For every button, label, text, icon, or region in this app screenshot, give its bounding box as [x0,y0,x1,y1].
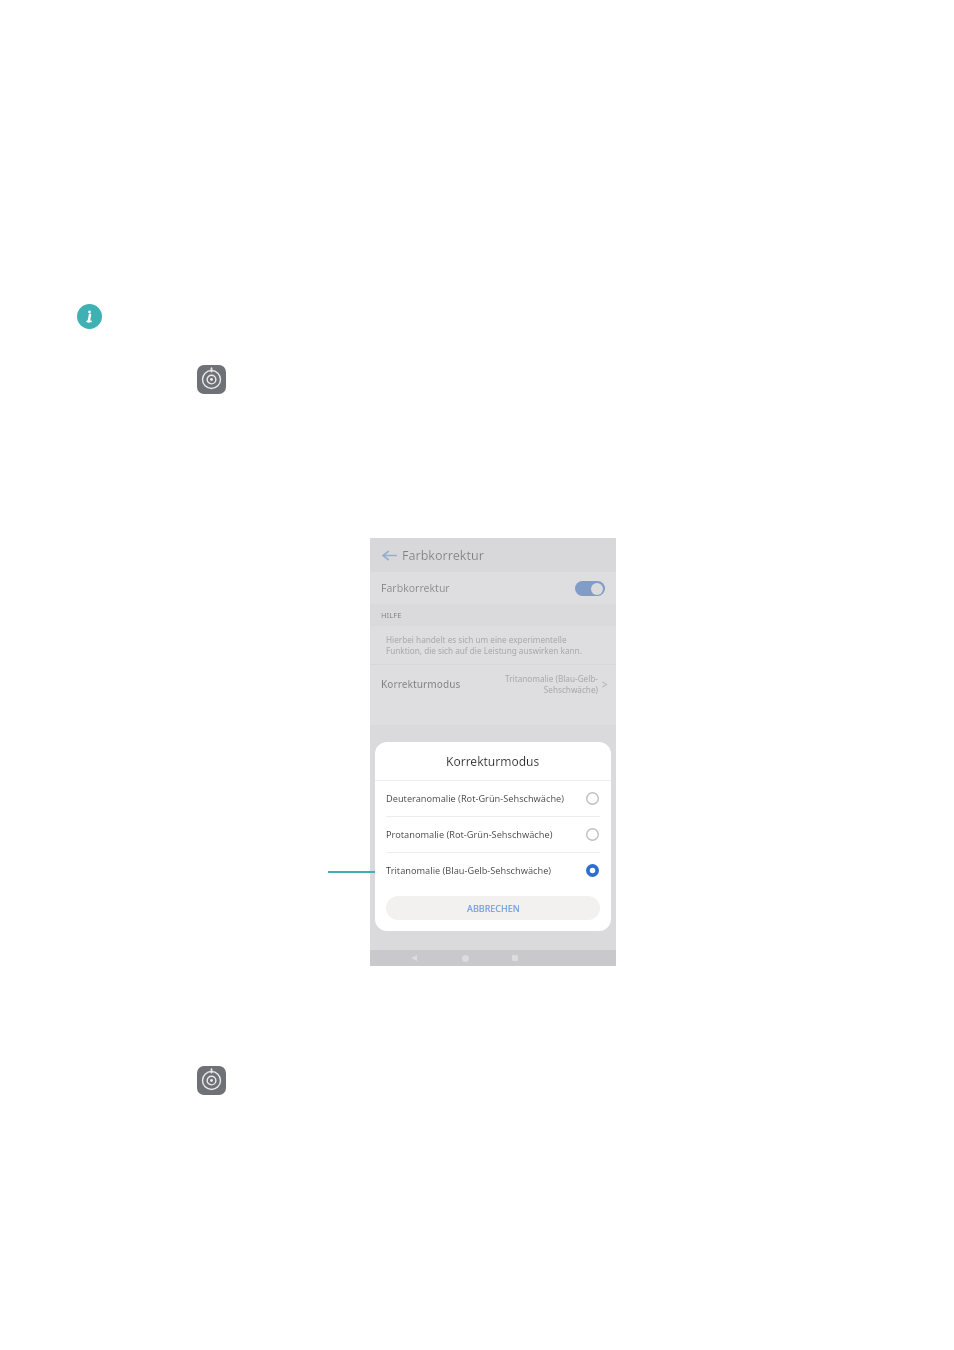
button[interactable]: Information [77,304,102,329]
staticText: Farbkorrektur [381,581,575,595]
button[interactable]: Einstellungen [197,365,226,394]
staticText: Funktion, die sich auf die Leistung ausw… [386,645,582,656]
staticText: ABBRECHEN [467,902,520,914]
staticText: HILFE [381,610,402,620]
staticText: Tritanomalie (Blau-Gelb- Sehschwäche) [505,673,598,695]
staticText: Korrekturmodus [446,753,540,769]
staticText: Farbkorrektur [402,547,484,564]
staticText: Deuteranomalie (Rot-Grün-Sehschwäche) [386,792,582,805]
button[interactable]: Farbkorrektur [370,572,616,604]
button[interactable]: Farbkorrektur aktivieren [575,581,605,596]
staticText: Protanomalie (Rot-Grün-Sehschwäche) [386,828,582,841]
button[interactable]: Übersicht [508,951,522,965]
button[interactable]: Korrekturmodus [370,665,616,703]
staticText: Hierbei handelt es sich um eine experime… [386,634,567,645]
button[interactable]: Tritanomalie (Blau-Gelb-Sehschwäche) [375,853,611,888]
staticText: Tritanomalie (Blau-Gelb-Sehschwäche) [386,864,582,877]
button[interactable]: Protanomalie (Rot-Grün-Sehschwäche) [375,817,611,852]
button[interactable]: Deuteranomalie (Rot-Grün-Sehschwäche) [375,781,611,816]
button[interactable]: Startseite [458,951,472,965]
staticText: Korrekturmodus [381,677,461,691]
button[interactable]: Zurück [407,951,421,965]
button[interactable]: Zurück [376,542,402,568]
button[interactable]: Einstellungen [197,1066,226,1095]
button[interactable]: ABBRECHEN [386,896,600,920]
